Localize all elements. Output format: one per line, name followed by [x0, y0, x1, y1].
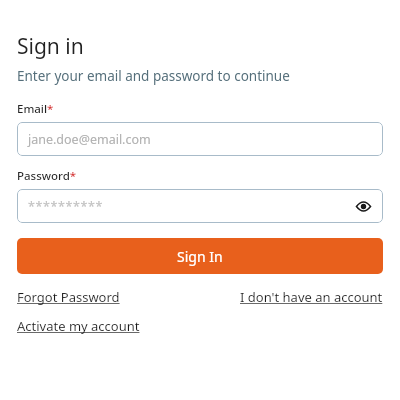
button[interactable]: Activate my account	[17, 317, 140, 335]
button[interactable]: Show password	[352, 195, 374, 217]
button[interactable]: I don't have an account	[240, 288, 383, 306]
button[interactable]: jane.doe@email.com	[17, 122, 383, 156]
staticText: I don't have an account	[240, 288, 383, 306]
staticText: jane.doe@email.com	[28, 131, 151, 148]
staticText: Password*	[17, 168, 77, 184]
staticText: **********	[28, 198, 352, 215]
staticText: Enter your email and password to continu…	[17, 67, 290, 85]
staticText: Sign In	[177, 247, 223, 266]
staticText: Sign in	[17, 32, 84, 61]
staticText: Email*	[17, 101, 54, 117]
button[interactable]: **********	[17, 189, 383, 223]
staticText: Activate my account	[17, 317, 140, 335]
staticText: Forgot Password	[17, 288, 120, 306]
button[interactable]: Sign In	[17, 238, 383, 274]
button[interactable]: Forgot Password	[17, 288, 120, 306]
